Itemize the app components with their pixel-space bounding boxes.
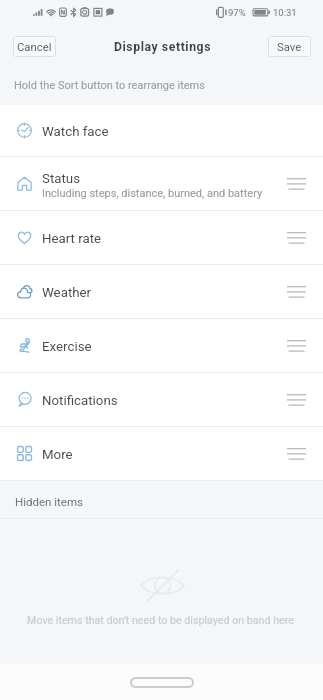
- button[interactable]: Save: [268, 36, 311, 57]
- staticText: Cancel: [17, 41, 52, 54]
- button[interactable]: Reorder $title: [269, 427, 323, 480]
- button[interactable]: Weather: [0, 265, 323, 318]
- button[interactable]: Cancel: [13, 36, 56, 57]
- button[interactable]: Notifications: [0, 373, 323, 426]
- staticText: Save: [277, 41, 302, 54]
- staticText: Watch face: [42, 124, 109, 140]
- staticText: Display settings: [114, 40, 212, 54]
- staticText: Heart rate: [42, 231, 102, 247]
- button[interactable]: Watch face: [0, 105, 323, 156]
- button[interactable]: Reorder $title: [269, 211, 323, 264]
- staticText: 97%: [228, 7, 246, 18]
- button[interactable]: Heart rate: [0, 211, 323, 264]
- button[interactable]: Reorder $title: [269, 157, 323, 210]
- staticText: Status: [42, 171, 81, 187]
- button[interactable]: Exercise: [0, 319, 323, 372]
- staticText: Exercise: [42, 339, 92, 355]
- staticText: Hold the Sort button to rearrange items: [14, 79, 205, 92]
- staticText: Including steps, distance, burned, and b…: [42, 187, 263, 200]
- staticText: Notifications: [42, 393, 118, 409]
- staticText: Hidden items: [15, 495, 83, 508]
- staticText: Move items that don't need to be display…: [27, 614, 294, 627]
- staticText: 10:31: [273, 7, 297, 18]
- staticText: More: [42, 447, 73, 463]
- button[interactable]: Reorder $title: [269, 265, 323, 318]
- staticText: Weather: [42, 285, 92, 301]
- button[interactable]: Reorder $title: [269, 319, 323, 372]
- button[interactable]: Status: [0, 157, 323, 210]
- button[interactable]: Reorder $title: [269, 373, 323, 426]
- button[interactable]: More: [0, 427, 323, 480]
